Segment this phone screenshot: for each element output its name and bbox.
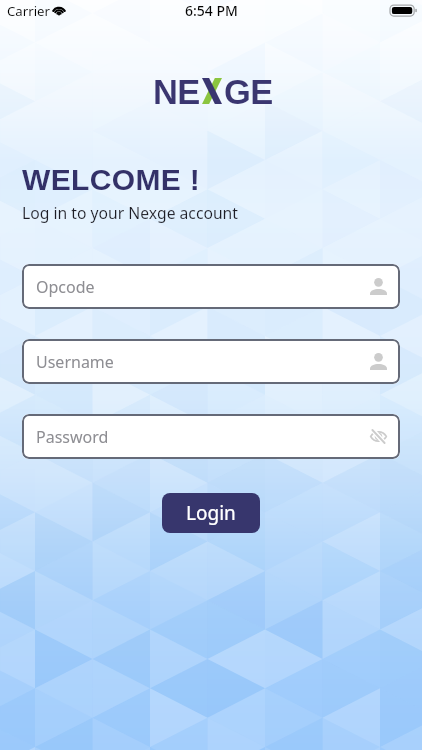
staticText: Opcode [36, 276, 370, 298]
button[interactable]: Login [162, 493, 260, 533]
staticText: GE [224, 73, 273, 112]
other: User [370, 353, 387, 370]
other: Show password [370, 430, 387, 443]
staticText: 6:54 PM [185, 1, 238, 20]
staticText: NE [153, 73, 200, 112]
staticText: Login [186, 500, 236, 526]
staticText: Username [36, 351, 370, 373]
other: Wi-Fi [52, 5, 66, 15]
staticText: WELCOME ! [22, 163, 201, 197]
staticText: Password [36, 426, 370, 448]
staticText: Log in to your Nexge account [22, 202, 238, 223]
button[interactable]: Opcode [22, 264, 400, 309]
other: User [370, 278, 387, 295]
button[interactable]: Username [22, 339, 400, 384]
button[interactable]: Password [22, 414, 400, 459]
staticText: Carrier [7, 2, 50, 20]
